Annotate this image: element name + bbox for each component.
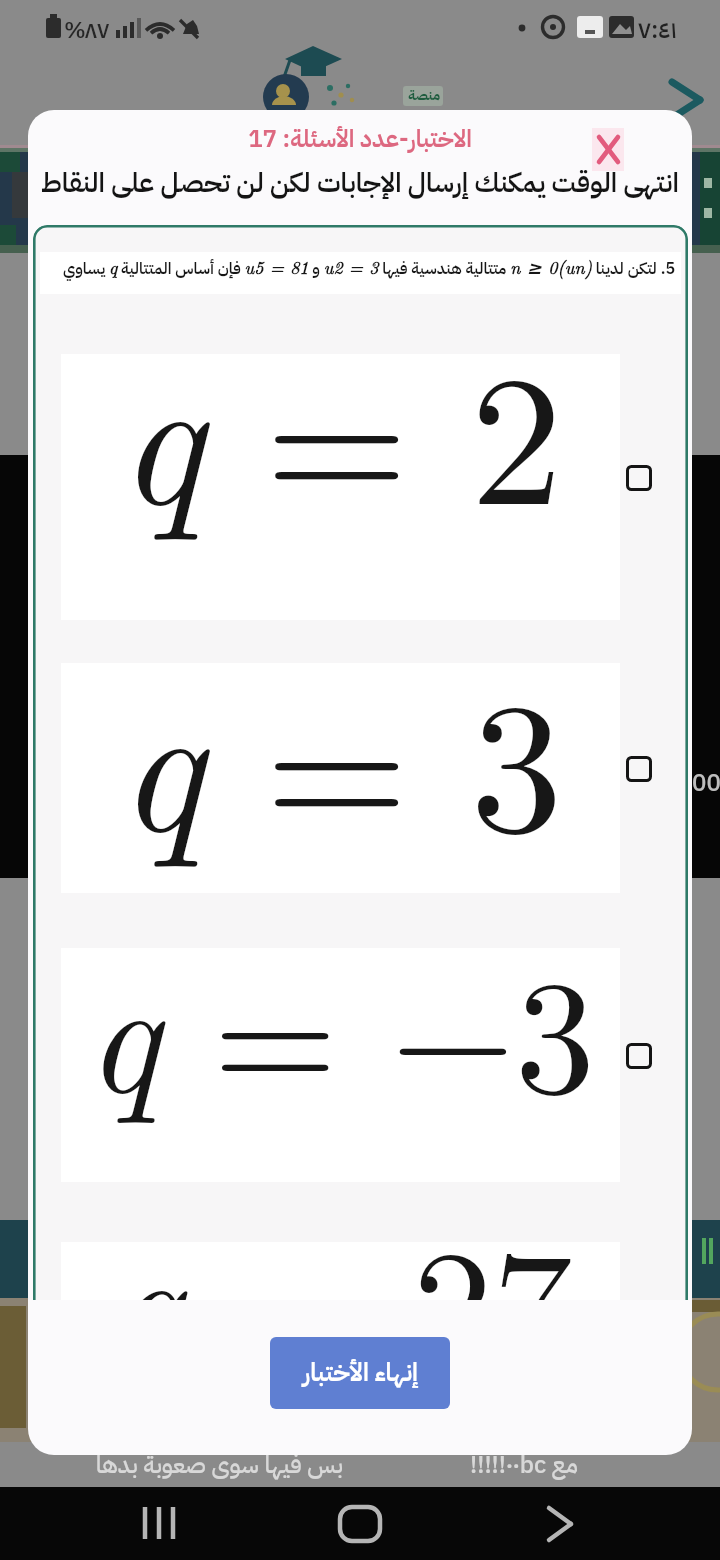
button[interactable] (592, 128, 624, 171)
staticText: إنهاء الأختبار (302, 1354, 418, 1392)
button[interactable] (626, 465, 652, 491)
staticText: ٧:٤١ (638, 12, 677, 48)
staticText: q = 2 (118, 296, 563, 558)
staticText: مع ٠٠bc!!!!! (470, 1447, 578, 1483)
staticText: 00 (692, 765, 720, 801)
button[interactable] (626, 756, 652, 782)
button[interactable]: q = −3 (61, 948, 620, 1182)
staticText: بس فيها سوى صعوبة بدها (95, 1447, 343, 1483)
staticText: %٨٧ (64, 13, 110, 48)
staticText: q = −3 (86, 912, 596, 1139)
staticText: منصة (408, 85, 441, 106)
button[interactable] (120, 1487, 200, 1560)
staticText: 5. لتكن لدينا (un)n ≥ 0 متتالية هندسية ف… (45, 254, 675, 281)
button[interactable]: إنهاء الأختبار (270, 1337, 450, 1409)
staticText: انتهى الوقت يمكنك إرسال الإجابات لكن لن … (28, 163, 692, 204)
staticText: الاختبار-عدد الأسئلة: 17 (28, 121, 692, 157)
button[interactable] (520, 1487, 600, 1560)
staticText: q = 3 (118, 623, 563, 885)
staticText: q = 27 (108, 1182, 573, 1300)
button[interactable]: q = 2 (61, 354, 620, 620)
button[interactable]: q = 27 (61, 1242, 620, 1300)
button[interactable]: q = 3 (61, 663, 620, 893)
button[interactable] (320, 1487, 400, 1560)
button[interactable] (626, 1043, 652, 1069)
